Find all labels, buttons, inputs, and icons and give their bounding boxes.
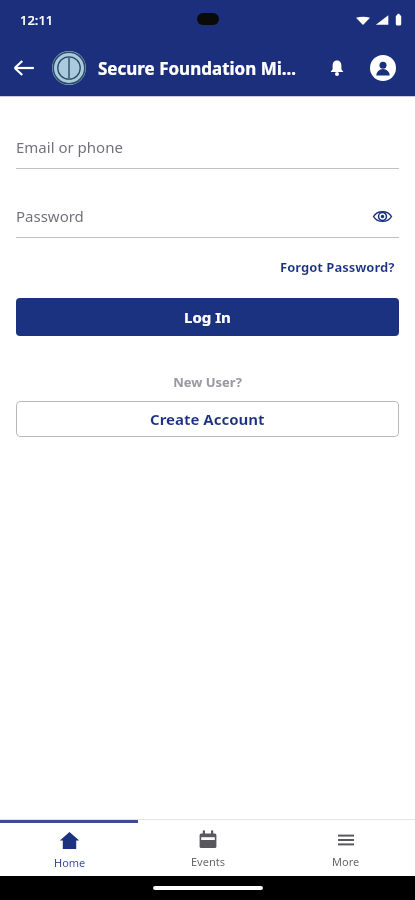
button[interactable]: Log In xyxy=(16,298,399,336)
staticText: Secure Foundation Mi... xyxy=(98,57,297,80)
staticText: Email or phone xyxy=(16,137,123,157)
button[interactable]: More xyxy=(277,823,415,876)
staticText: New User? xyxy=(16,373,399,391)
staticText: Log In xyxy=(184,307,231,327)
button[interactable]: Home xyxy=(0,823,139,876)
button[interactable]: Account xyxy=(359,44,407,92)
button[interactable]: Back xyxy=(0,44,48,92)
button[interactable]: Create Account xyxy=(16,401,399,437)
staticText: Events xyxy=(191,854,225,869)
staticText: 12:11 xyxy=(20,11,54,29)
button[interactable]: Notifications xyxy=(315,46,359,90)
button[interactable]: Show password xyxy=(365,199,399,233)
staticText: More xyxy=(332,854,360,869)
staticText: Forgot Password? xyxy=(280,258,395,276)
button[interactable]: Forgot Password? xyxy=(276,254,399,280)
staticText: Create Account xyxy=(150,409,265,429)
staticText: Password xyxy=(16,206,84,226)
button[interactable]: Events xyxy=(139,823,277,876)
staticText: Home xyxy=(54,855,86,870)
